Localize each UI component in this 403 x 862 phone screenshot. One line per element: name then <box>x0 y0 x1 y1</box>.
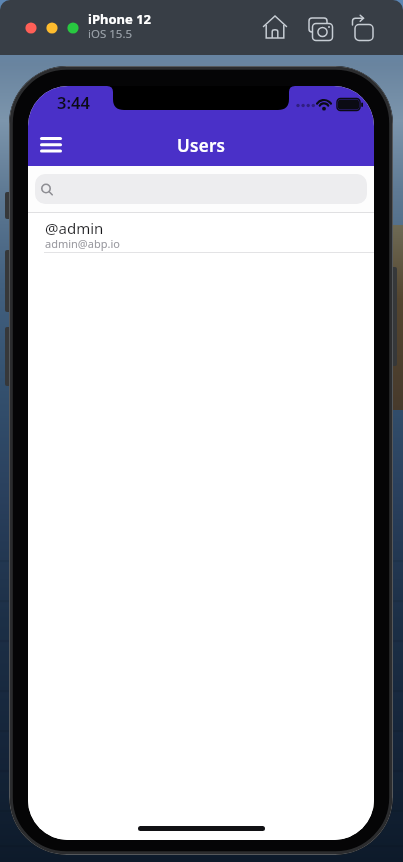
button[interactable]: @admin <box>28 213 374 253</box>
staticText: @admin <box>45 218 104 238</box>
staticText: Users <box>177 134 226 157</box>
staticText: iOS 15.5 <box>88 26 133 42</box>
staticText: admin@abp.io <box>45 236 120 251</box>
button[interactable] <box>262 14 288 40</box>
button[interactable] <box>35 174 367 204</box>
staticText: iPhone 12 <box>88 10 151 28</box>
staticText: 3:44 <box>57 91 90 113</box>
button[interactable] <box>33 129 73 159</box>
button[interactable] <box>308 14 334 42</box>
button[interactable] <box>351 14 375 42</box>
